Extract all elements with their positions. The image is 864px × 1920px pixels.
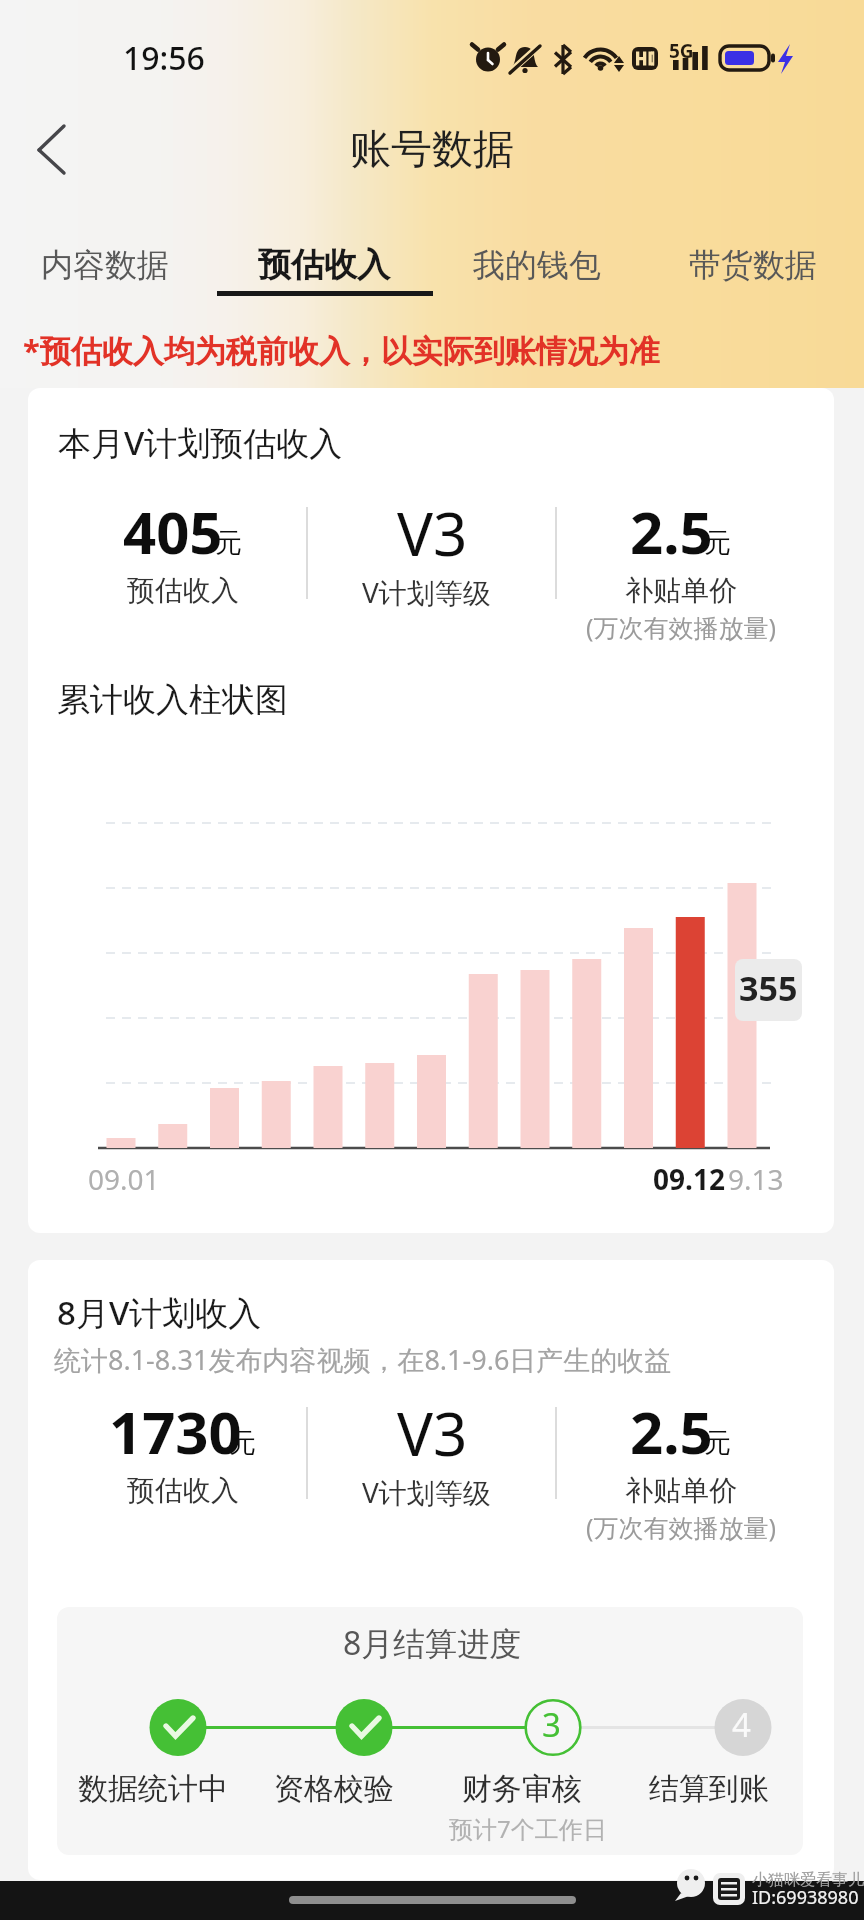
staticText: 元: [229, 1426, 256, 1460]
staticText: 1730: [109, 1392, 242, 1471]
staticText: 4: [732, 1702, 751, 1747]
staticText: 元: [704, 526, 731, 560]
staticText: 统计8.1-8.31发布内容视频，在8.1-9.6日产生的收益: [54, 1341, 672, 1378]
staticText: 2.5: [630, 492, 713, 571]
button[interactable]: 内容数据: [21, 218, 193, 298]
staticText: 我的钱包: [473, 245, 601, 285]
staticText: 本月V计划预估收入: [58, 420, 343, 465]
staticText: 财务审核: [462, 1770, 582, 1808]
staticText: 3: [542, 1702, 561, 1747]
button[interactable]: 带货数据: [669, 218, 841, 298]
staticText: 账号数据: [350, 124, 514, 176]
staticText: V3: [397, 492, 468, 574]
staticText: 09.01: [88, 1160, 160, 1198]
staticText: 资格校验: [274, 1770, 394, 1808]
staticText: 2.5: [630, 1392, 713, 1471]
staticText: 预计7个工作日: [449, 1812, 607, 1845]
staticText: 元: [215, 526, 242, 560]
staticText: 累计收入柱状图: [57, 679, 288, 721]
staticText: 预估收入: [127, 573, 239, 608]
staticText: 19:56: [123, 36, 205, 80]
staticText: 预估收入: [127, 1473, 239, 1508]
staticText: 补贴单价: [625, 1473, 737, 1508]
staticText: (万次有效播放量): [586, 1510, 777, 1544]
staticText: 元: [704, 1426, 731, 1460]
staticText: 补贴单价: [625, 573, 737, 608]
staticText: 结算到账: [649, 1770, 769, 1808]
staticText: 8月V计划收入: [57, 1290, 262, 1335]
staticText: 内容数据: [41, 245, 169, 285]
button[interactable]: 我的钱包: [453, 218, 625, 298]
button[interactable]: 预估收入: [217, 218, 433, 298]
button[interactable]: Back: [12, 110, 92, 190]
staticText: 数据统计中: [78, 1770, 228, 1808]
staticText: V计划等级: [362, 1473, 491, 1511]
staticText: 8月结算进度: [343, 1621, 522, 1665]
staticText: 带货数据: [689, 245, 817, 285]
staticText: *预估收入均为税前收入，以实际到账情况为准: [23, 329, 660, 371]
staticText: ID:69938980: [752, 1885, 859, 1910]
staticText: (万次有效播放量): [586, 610, 777, 644]
staticText: 小猫咪爱看事儿: [752, 1870, 864, 1890]
staticText: 预估收入: [258, 244, 390, 286]
staticText: 355: [739, 965, 798, 1011]
other: Status icons: [460, 36, 805, 80]
button[interactable]: [0, 218, 864, 302]
staticText: 405: [123, 492, 223, 571]
staticText: 5G: [669, 38, 694, 64]
staticText: V3: [397, 1392, 468, 1474]
staticText: 09.12: [653, 1160, 725, 1198]
staticText: 9.13: [728, 1160, 784, 1198]
staticText: V计划等级: [362, 573, 491, 611]
